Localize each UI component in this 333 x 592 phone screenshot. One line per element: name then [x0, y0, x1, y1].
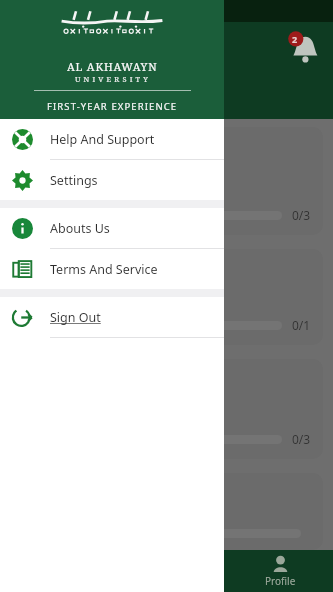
- staticText: 2: [292, 33, 298, 45]
- staticText: U N I V E R S I T Y: [75, 74, 149, 84]
- staticText: Abouts Us: [50, 220, 110, 237]
- button[interactable]: Terms And Service: [0, 249, 224, 289]
- staticText: Terms And Service: [50, 261, 158, 278]
- staticText: 0/3: [292, 207, 311, 223]
- staticText: Settings: [50, 172, 98, 189]
- button[interactable]: Attend the sessions: [10, 359, 323, 459]
- staticText: 0/1: [292, 317, 311, 333]
- button[interactable]: Profile: [227, 550, 333, 592]
- staticText: FIRST-YEAR EXPERIENCE: [47, 100, 178, 113]
- button[interactable]: Abouts Us: [0, 208, 224, 248]
- button[interactable]: Sign Out: [0, 297, 224, 337]
- staticText: Meet your mentor: [22, 139, 117, 154]
- button[interactable]: Connect with: [10, 249, 323, 345]
- staticText: about campus life.: [22, 173, 118, 188]
- button[interactable]: Settings: [0, 160, 224, 200]
- staticText: and learn more: [22, 156, 102, 171]
- staticText: Help And Support: [50, 131, 155, 148]
- staticText: your mentees: [22, 278, 94, 293]
- button[interactable]: Join the orientation: [10, 473, 323, 550]
- staticText: Sign Out: [50, 309, 101, 326]
- button[interactable]: Help And Support: [0, 119, 224, 159]
- staticText: AL AKHAWAYN: [67, 59, 158, 74]
- button[interactable]: Meet your mentor: [10, 127, 323, 235]
- staticText: Connect with: [22, 261, 90, 276]
- staticText: Profile: [265, 574, 296, 588]
- button[interactable]: Scan: [121, 550, 227, 592]
- button[interactable]: Notifications: [283, 28, 323, 68]
- staticText: 0/3: [292, 431, 311, 447]
